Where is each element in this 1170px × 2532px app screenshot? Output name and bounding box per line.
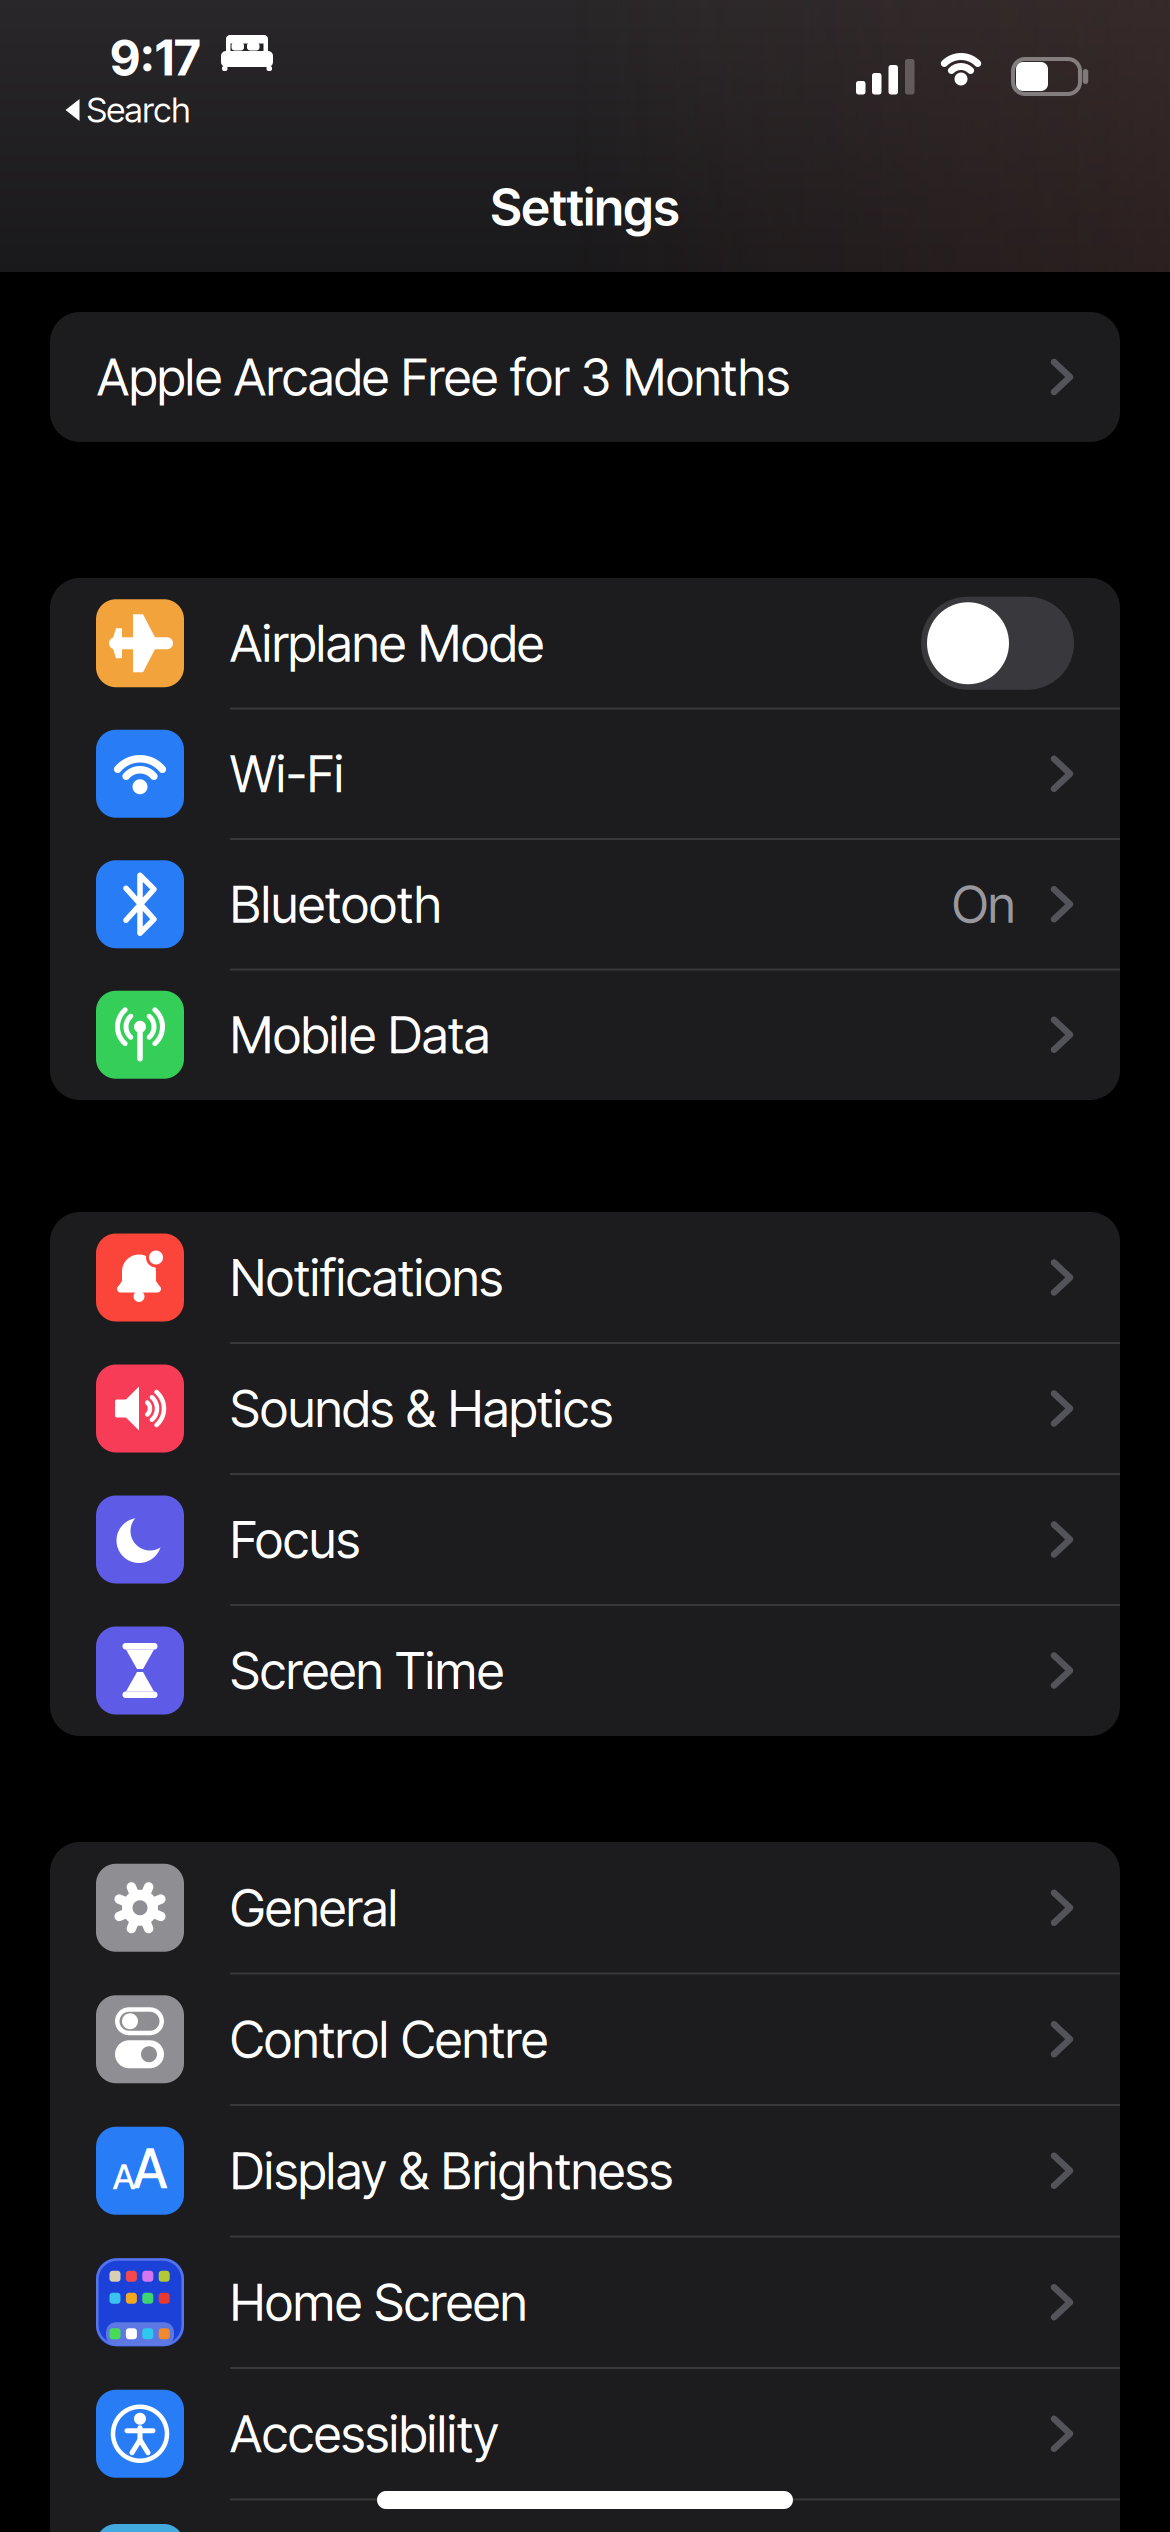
- staticText: Sounds & Haptics: [230, 1379, 613, 1438]
- staticText: Apple Arcade Free for 3 Months: [97, 347, 790, 407]
- staticText: Notifications: [230, 1248, 503, 1307]
- button[interactable]: Focus: [50, 1474, 1120, 1604]
- staticText: Mobile Data: [230, 1005, 490, 1065]
- button[interactable]: Sounds & Haptics: [50, 1343, 1120, 1473]
- staticText: Focus: [230, 1510, 360, 1569]
- button[interactable]: Search: [65, 90, 190, 130]
- button[interactable]: Airplane Mode: [50, 578, 1120, 708]
- staticText: Wi-Fi: [230, 744, 344, 804]
- button[interactable]: Home Screen: [50, 2237, 1120, 2367]
- button[interactable]: Accessibility: [50, 2369, 1120, 2499]
- button[interactable]: General: [50, 1843, 1120, 1973]
- staticText: On: [952, 874, 1015, 934]
- staticText: Control Centre: [230, 2009, 548, 2069]
- staticText: Display & Brightness: [230, 2141, 673, 2201]
- staticText: A: [112, 2156, 135, 2197]
- button[interactable]: Apple Arcade Free for 3 Months: [50, 312, 1120, 442]
- staticText: Screen Time: [230, 1641, 504, 1700]
- button[interactable]: Mobile Data: [50, 970, 1120, 1100]
- staticText: Airplane Mode: [230, 613, 544, 673]
- button[interactable]: A: [50, 2106, 1120, 2236]
- staticText: 9:17: [110, 30, 200, 86]
- staticText: Home Screen: [230, 2272, 527, 2332]
- staticText: Bluetooth: [230, 874, 442, 934]
- staticText: A: [132, 2137, 167, 2200]
- button[interactable]: Screen Time: [50, 1605, 1120, 1735]
- staticText: Search: [86, 90, 190, 130]
- staticText: Accessibility: [230, 2404, 499, 2464]
- staticText: General: [230, 1878, 398, 1938]
- button[interactable]: Wi-Fi: [50, 709, 1120, 839]
- button[interactable]: Control Centre: [50, 1974, 1120, 2104]
- button[interactable]: Bluetooth: [50, 839, 1120, 969]
- button[interactable]: Notifications: [50, 1212, 1120, 1342]
- staticText: Settings: [490, 177, 679, 237]
